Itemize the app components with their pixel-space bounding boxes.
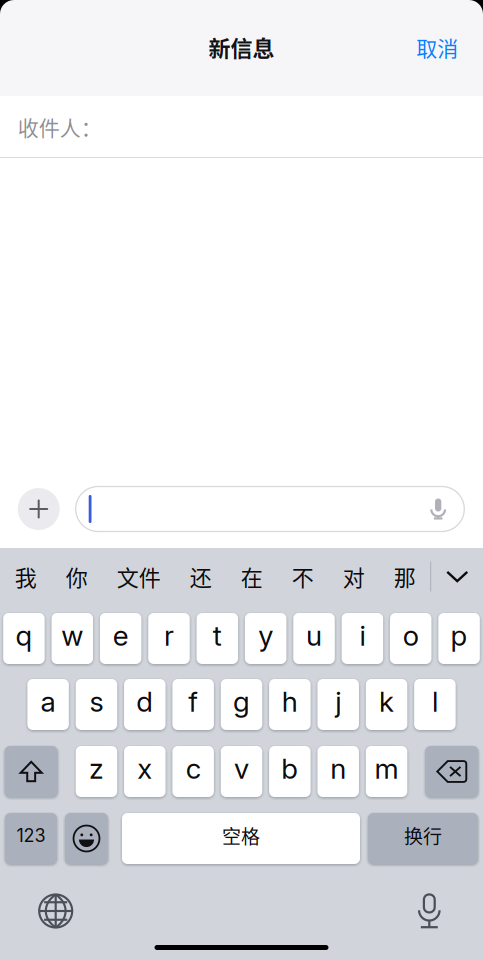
button[interactable]: 你 xyxy=(51,548,102,605)
staticText: d xyxy=(136,685,153,718)
button[interactable]: 对 xyxy=(328,548,379,605)
button[interactable]: m xyxy=(366,746,407,797)
staticText: 我 xyxy=(15,561,37,592)
staticText: w xyxy=(61,619,83,652)
button[interactable]: 123 xyxy=(5,813,57,864)
button[interactable]: k xyxy=(366,679,407,730)
staticText: z xyxy=(89,752,104,785)
staticText: 换行 xyxy=(404,822,442,849)
staticText: 不 xyxy=(292,561,314,592)
staticText: 还 xyxy=(190,561,212,592)
button[interactable]: w xyxy=(51,613,93,664)
button[interactable]: x xyxy=(124,746,165,797)
button[interactable]: Delete xyxy=(425,746,478,797)
staticText: x xyxy=(137,752,152,785)
button[interactable]: i xyxy=(342,613,383,664)
staticText: t xyxy=(213,619,222,652)
button[interactable]: f xyxy=(172,679,214,730)
button[interactable]: 文件 xyxy=(102,548,175,605)
staticText: 你 xyxy=(66,561,88,592)
staticText: 那 xyxy=(394,561,416,592)
staticText: p xyxy=(451,619,468,652)
staticText: g xyxy=(233,685,250,718)
button[interactable]: Switch keyboard xyxy=(30,885,82,937)
staticText: k xyxy=(379,685,394,718)
button[interactable]: e xyxy=(100,613,141,664)
button[interactable]: d xyxy=(124,679,165,730)
staticText: m xyxy=(375,752,399,785)
staticText: s xyxy=(89,685,103,718)
staticText: a xyxy=(41,685,56,718)
staticText: v xyxy=(234,752,249,785)
button[interactable]: 那 xyxy=(379,548,430,605)
staticText: y xyxy=(258,619,273,652)
button[interactable]: r xyxy=(148,613,190,664)
staticText: i xyxy=(359,619,365,652)
button[interactable]: 取消 xyxy=(402,21,483,73)
staticText: c xyxy=(186,752,201,785)
staticText: 取消 xyxy=(416,32,458,62)
button[interactable]: o xyxy=(390,613,431,664)
staticText: 文件 xyxy=(117,561,161,592)
button[interactable]: u xyxy=(293,613,335,664)
staticText: l xyxy=(432,685,438,718)
button[interactable]: Hide keyboard xyxy=(431,548,483,605)
button[interactable]: q xyxy=(3,613,45,664)
staticText: f xyxy=(188,685,198,718)
button[interactable]: 还 xyxy=(175,548,226,605)
button[interactable]: Emoji xyxy=(65,813,108,864)
button[interactable]: j xyxy=(317,679,359,730)
staticText: u xyxy=(306,619,322,652)
staticText: e xyxy=(113,619,129,652)
button[interactable]: 换行 xyxy=(368,813,478,864)
button[interactable]: 在 xyxy=(226,548,277,605)
button[interactable]: h xyxy=(269,679,311,730)
staticText: j xyxy=(335,685,341,718)
button[interactable]: Shift xyxy=(5,746,58,797)
button[interactable]: c xyxy=(172,746,214,797)
staticText: 在 xyxy=(241,561,263,592)
staticText: 空格 xyxy=(222,822,260,849)
button[interactable]: z xyxy=(76,746,117,797)
staticText: h xyxy=(282,685,298,718)
button[interactable]: Dictate xyxy=(403,885,455,937)
staticText: b xyxy=(281,752,298,785)
button[interactable]: b xyxy=(269,746,311,797)
button[interactable]: n xyxy=(317,746,359,797)
staticText: q xyxy=(15,619,32,652)
staticText: n xyxy=(330,752,346,785)
button[interactable]: v xyxy=(221,746,262,797)
button[interactable]: 空格 xyxy=(122,813,360,864)
button[interactable]: y xyxy=(245,613,286,664)
button[interactable]: t xyxy=(197,613,238,664)
staticText: o xyxy=(403,619,419,652)
button[interactable]: l xyxy=(414,679,456,730)
staticText: r xyxy=(164,619,174,652)
button[interactable]: 不 xyxy=(277,548,328,605)
button[interactable]: g xyxy=(221,679,262,730)
button[interactable]: a xyxy=(27,679,69,730)
staticText: 收件人： xyxy=(18,111,102,142)
button[interactable]: p xyxy=(438,613,480,664)
button[interactable]: 我 xyxy=(0,548,51,605)
staticText: 对 xyxy=(343,561,365,592)
staticText: 123 xyxy=(16,825,45,846)
button[interactable]: s xyxy=(76,679,117,730)
button[interactable]: Add attachment xyxy=(18,488,60,530)
staticText: 新信息 xyxy=(208,31,274,63)
